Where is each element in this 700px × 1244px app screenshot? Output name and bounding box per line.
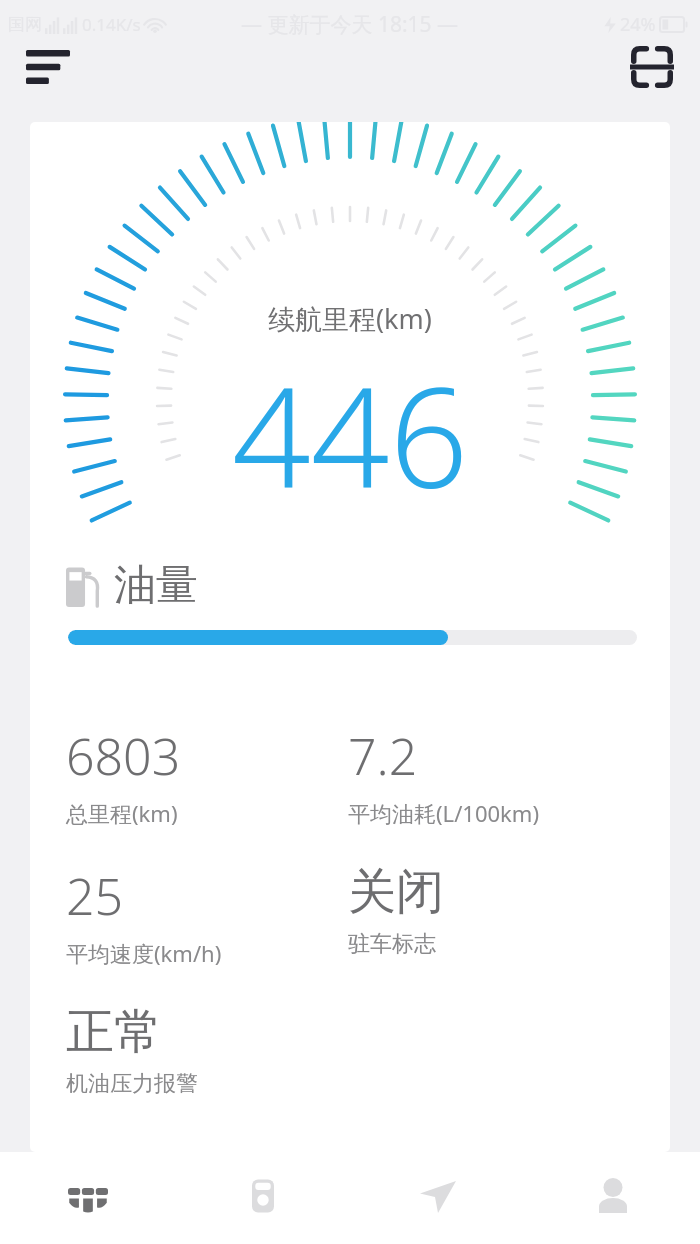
staticText: 续航里程(km) [268, 300, 432, 337]
button[interactable]: Control [175, 1152, 350, 1244]
button[interactable]: Profile [525, 1152, 700, 1244]
button[interactable]: 6803 [66, 722, 356, 828]
button[interactable]: 关闭 [348, 862, 638, 958]
staticText: 总里程(km) [66, 798, 178, 828]
button[interactable]: Scan QR code [616, 31, 688, 103]
staticText: 平均速度(km/h) [66, 938, 222, 968]
button[interactable]: 25 [66, 862, 356, 968]
staticText: 正常 [66, 1002, 162, 1062]
staticText: 驻车标志 [348, 930, 436, 958]
button[interactable]: Vehicle [0, 1152, 175, 1244]
staticText: 6803 [66, 722, 181, 790]
button[interactable]: 正常 [66, 1002, 356, 1098]
staticText: 国网 [8, 14, 42, 35]
staticText: 7.2 [348, 722, 418, 790]
staticText: 24% [620, 12, 656, 37]
staticText: 446 [232, 340, 469, 528]
staticText: 25 [66, 862, 124, 930]
staticText: 平均油耗(L/100km) [348, 798, 539, 828]
staticText: 0.14K/s [82, 13, 141, 36]
staticText: 油量 [114, 559, 198, 612]
staticText: — 更新于今天 18:15 — [241, 10, 459, 39]
button[interactable]: Menu [12, 31, 84, 103]
staticText: 关闭 [348, 862, 444, 922]
button[interactable]: 7.2 [348, 722, 638, 828]
button[interactable]: Navigation [350, 1152, 525, 1244]
staticText: 机油压力报警 [66, 1070, 198, 1098]
